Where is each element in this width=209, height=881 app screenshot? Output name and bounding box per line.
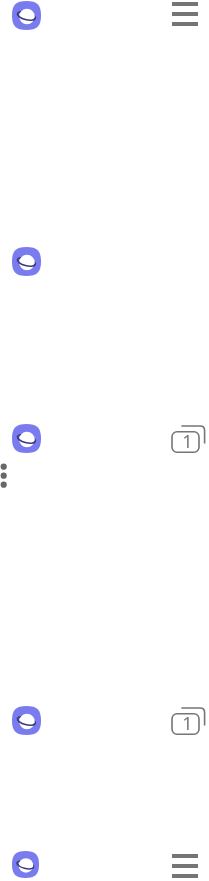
button[interactable]: Open tabs: 1	[172, 708, 205, 734]
button[interactable]: Open tabs: 1	[172, 426, 205, 452]
staticText: 1	[174, 429, 201, 449]
button[interactable]: Menu	[172, 2, 198, 26]
button[interactable]: More options	[0, 463, 11, 491]
button[interactable]: Menu	[172, 854, 198, 878]
staticText: 1	[174, 711, 201, 731]
button[interactable]: Samsung Internet	[12, 247, 41, 276]
button[interactable]: Samsung Internet	[12, 424, 41, 453]
button[interactable]: Samsung Internet	[12, 851, 39, 878]
button[interactable]: Samsung Internet	[12, 1, 41, 30]
button[interactable]: Samsung Internet	[12, 706, 41, 735]
